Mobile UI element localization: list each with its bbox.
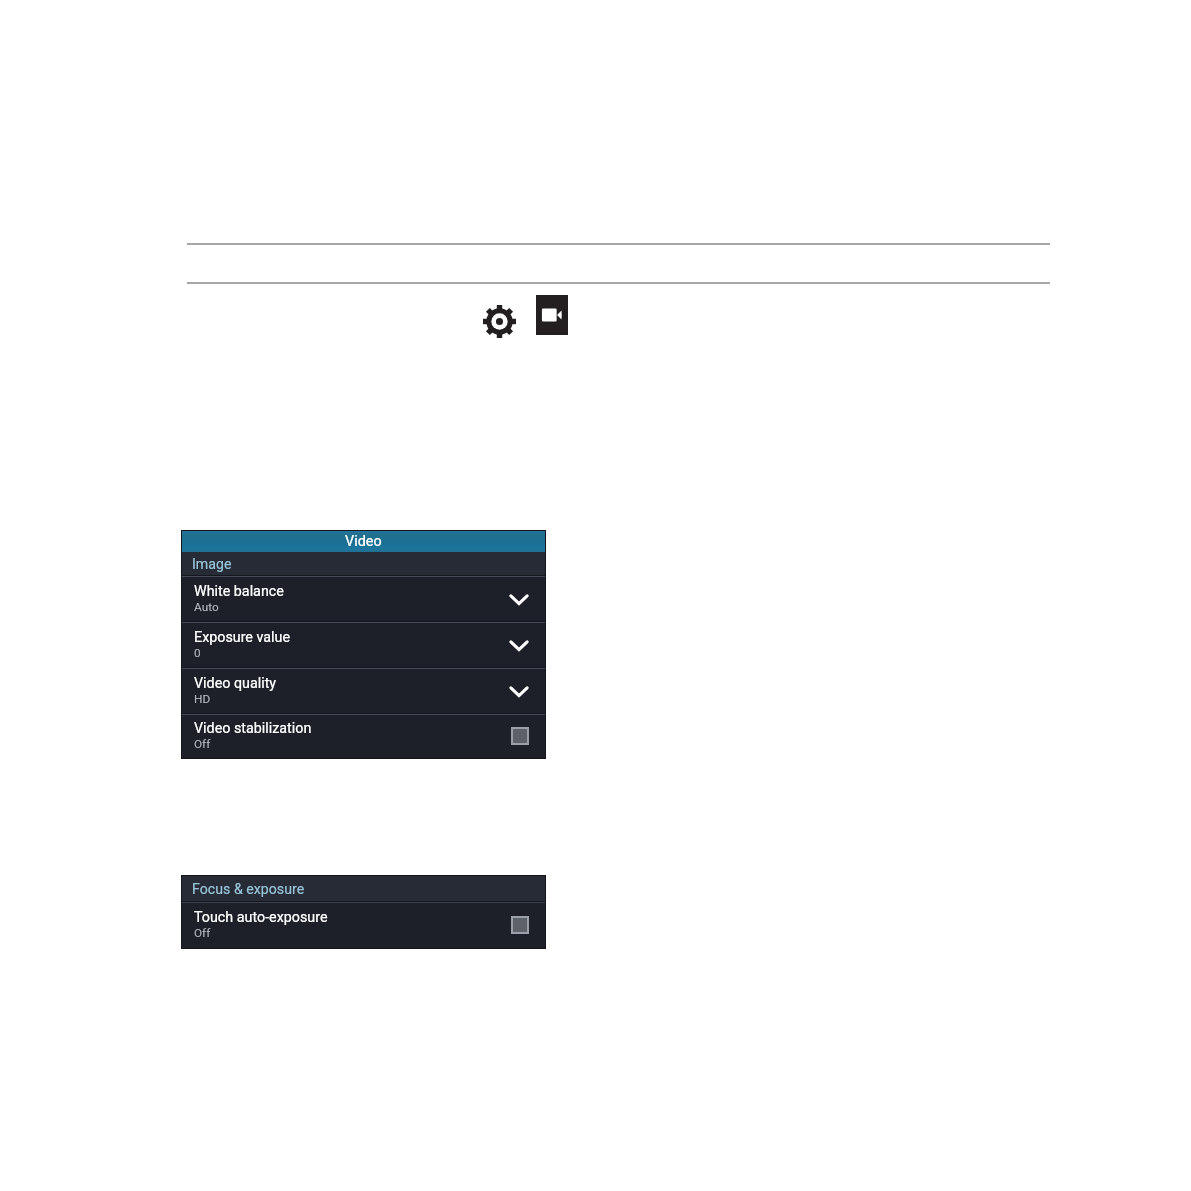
staticText: Off	[194, 926, 211, 940]
button[interactable]: Exposure value	[182, 621, 545, 667]
staticText: Video quality	[194, 675, 277, 692]
staticText: 0	[194, 646, 201, 660]
staticText: Auto	[194, 600, 219, 614]
button[interactable]: Video quality	[182, 667, 545, 713]
staticText: Touch auto-exposure	[194, 909, 328, 926]
staticText: Focus & exposure	[192, 881, 305, 898]
button[interactable]: Video camera	[536, 295, 568, 335]
staticText: Video	[345, 533, 382, 550]
button[interactable]: Video stabilization	[182, 713, 545, 758]
staticText: Image	[192, 556, 232, 573]
staticText: Off	[194, 737, 211, 751]
button[interactable]: White balance	[182, 575, 545, 621]
button[interactable]: Settings	[483, 305, 516, 338]
staticText: HD	[194, 692, 211, 706]
staticText: Video stabilization	[194, 720, 312, 737]
staticText: White balance	[194, 583, 284, 600]
staticText: Exposure value	[194, 629, 291, 646]
button[interactable]: Touch auto-exposure	[182, 901, 545, 948]
